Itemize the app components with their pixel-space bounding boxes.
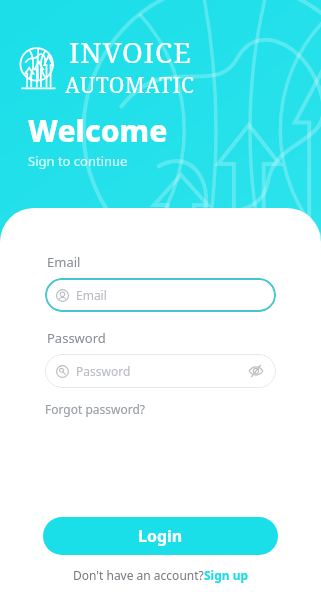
button[interactable]: Login — [43, 517, 278, 555]
staticText: Email — [76, 287, 107, 303]
staticText: Forgot password? — [45, 401, 146, 417]
staticText: Welcome — [28, 110, 168, 151]
button[interactable]: Don't have an account? — [73, 567, 249, 583]
staticText: Password — [47, 329, 106, 347]
button[interactable]: Email — [45, 278, 276, 312]
staticText: Email — [47, 253, 81, 271]
staticText: Sign up — [204, 567, 249, 583]
staticText: AUTOMATIC — [65, 71, 195, 100]
staticText: Sign to continue — [28, 152, 128, 170]
button[interactable]: Show password — [247, 362, 265, 380]
staticText: Password — [76, 363, 131, 379]
staticText: Don't have an account? — [73, 567, 204, 583]
staticText: Login — [138, 525, 183, 547]
button[interactable]: Password — [45, 354, 276, 388]
button[interactable]: Forgot password? — [45, 401, 146, 417]
staticText: INVOICE — [69, 33, 192, 71]
